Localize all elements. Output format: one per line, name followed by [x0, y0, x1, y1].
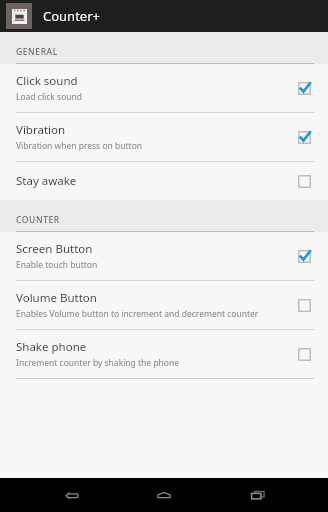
- button[interactable]: Vibration: [0, 113, 328, 161]
- button[interactable]: Screen Button: [0, 232, 328, 280]
- staticText: COUNTER: [16, 214, 60, 226]
- button[interactable]: Unchecked: [294, 295, 314, 315]
- button[interactable]: Back: [48, 478, 94, 512]
- staticText: Volume Button: [16, 290, 97, 306]
- staticText: Vibration when press on button: [16, 140, 143, 152]
- staticText: Vibration: [16, 122, 66, 138]
- staticText: Increment counter by shaking the phone: [16, 357, 180, 369]
- button[interactable]: Stay awake: [0, 162, 328, 200]
- button[interactable]: Volume Button: [0, 281, 328, 329]
- button[interactable]: Checked: [294, 246, 314, 266]
- staticText: Enables Volume button to increment and d…: [16, 308, 259, 320]
- button[interactable]: Unchecked: [294, 171, 314, 191]
- button[interactable]: Checked: [294, 127, 314, 147]
- button[interactable]: Recent apps: [235, 478, 281, 512]
- staticText: Shake phone: [16, 339, 87, 355]
- staticText: Counter+: [43, 7, 100, 25]
- staticText: Screen Button: [16, 241, 93, 257]
- button[interactable]: Shake phone: [0, 330, 328, 378]
- button[interactable]: Checked: [294, 78, 314, 98]
- staticText: GENERAL: [16, 46, 58, 58]
- button[interactable]: Unchecked: [294, 344, 314, 364]
- staticText: Enable touch button: [16, 259, 98, 271]
- button[interactable]: App icon: [6, 3, 32, 29]
- button[interactable]: Home: [141, 478, 187, 512]
- staticText: Click sound: [16, 73, 78, 89]
- staticText: Load click sound: [16, 91, 83, 103]
- staticText: Stay awake: [16, 173, 77, 189]
- button[interactable]: Click sound: [0, 64, 328, 112]
